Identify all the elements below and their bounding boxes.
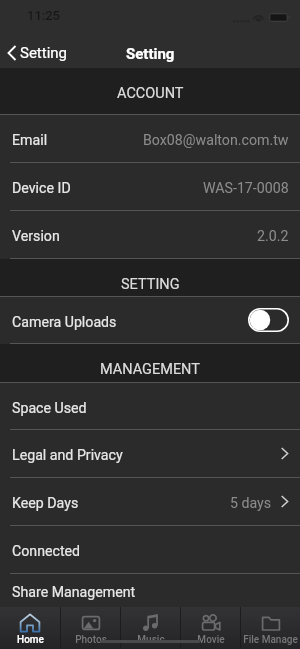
button[interactable]: Photos: [61, 607, 120, 649]
button[interactable]: Music: [121, 607, 180, 649]
staticText: Space Used: [12, 400, 87, 417]
button[interactable]: Share Management: [0, 574, 300, 607]
button[interactable]: Device ID: [0, 163, 300, 210]
staticText: ACCOUNT: [117, 85, 184, 102]
button[interactable]: Legal and Privacy: [0, 430, 300, 477]
button[interactable]: Movie: [181, 607, 240, 649]
button[interactable]: Camera Uploads: [0, 297, 300, 343]
staticText: Home: [17, 634, 44, 646]
staticText: Connected: [12, 543, 81, 560]
staticText: Box08@walton.com.tw: [143, 132, 289, 149]
staticText: Music: [137, 634, 165, 646]
staticText: Legal and Privacy: [12, 447, 123, 464]
staticText: Setting: [20, 44, 68, 62]
other: Camera Uploads toggle: [248, 308, 289, 332]
staticText: Photos: [75, 634, 107, 646]
button[interactable]: Space Used: [0, 383, 300, 429]
staticText: 11:25: [27, 8, 61, 23]
button[interactable]: Version: [0, 211, 300, 258]
button[interactable]: Connected: [0, 526, 300, 573]
button[interactable]: Keep Days: [0, 478, 300, 525]
staticText: Keep Days: [12, 495, 79, 512]
staticText: 2.0.2: [257, 228, 289, 245]
staticText: SETTING: [121, 276, 180, 293]
staticText: Movie: [197, 634, 225, 646]
button[interactable]: Home: [0, 607, 60, 649]
staticText: Email: [12, 132, 48, 149]
button[interactable]: File Manage: [241, 607, 300, 649]
button[interactable]: Email: [0, 115, 300, 162]
staticText: Version: [12, 228, 60, 245]
staticText: MANAGEMENT: [100, 361, 200, 378]
staticText: Share Management: [12, 584, 136, 601]
staticText: Setting: [126, 45, 175, 63]
button[interactable]: Setting: [0, 34, 78, 68]
staticText: Device ID: [12, 180, 71, 197]
staticText: WAS-17-0008: [203, 180, 289, 197]
staticText: File Manage: [243, 634, 298, 646]
staticText: 5 days: [230, 495, 272, 512]
staticText: Camera Uploads: [12, 314, 117, 331]
